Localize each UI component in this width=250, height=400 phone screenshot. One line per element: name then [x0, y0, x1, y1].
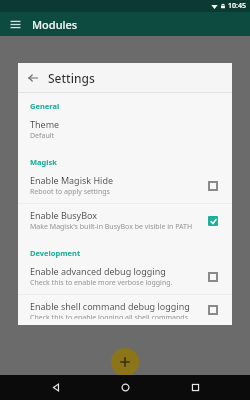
- staticText: Settings: [48, 70, 95, 86]
- staticText: Enable shell command debug logging: [30, 300, 190, 312]
- button[interactable]: Enable BusyBox: [18, 204, 232, 238]
- staticText: Check this to enable logging all shell c…: [30, 313, 198, 319]
- button[interactable]: Unchecked: [204, 301, 222, 319]
- staticText: Theme: [30, 118, 60, 130]
- button[interactable]: Back: [24, 69, 42, 87]
- button[interactable]: Enable Magisk Hide: [18, 169, 232, 203]
- staticText: Enable BusyBox: [30, 209, 98, 221]
- staticText: Enable advanced debug logging: [30, 265, 166, 277]
- staticText: Check this to enable more verbose loggin…: [30, 278, 173, 288]
- button[interactable]: Home: [111, 375, 139, 400]
- staticText: 10:45: [228, 1, 246, 11]
- staticText: Enable Magisk Hide: [30, 174, 114, 186]
- button[interactable]: Recent apps: [181, 375, 209, 400]
- staticText: General: [30, 101, 60, 111]
- button[interactable]: Checked: [204, 212, 222, 230]
- staticText: Modules: [32, 17, 78, 32]
- button[interactable]: Add module: [111, 348, 139, 376]
- button[interactable]: Theme: [18, 113, 232, 147]
- button[interactable]: Back: [42, 375, 70, 400]
- staticText: Reboot to apply settings: [30, 187, 110, 197]
- button[interactable]: Enable advanced debug logging: [18, 260, 232, 294]
- button[interactable]: Unchecked: [204, 177, 222, 195]
- staticText: Development: [30, 248, 81, 258]
- staticText: Magisk: [30, 157, 57, 167]
- button[interactable]: Unchecked: [204, 268, 222, 286]
- button[interactable]: Enable shell command debug logging: [18, 295, 232, 325]
- staticText: Make Magisk's built-in BusyBox be visibl…: [30, 222, 193, 232]
- staticText: Default: [30, 131, 55, 141]
- button[interactable]: Open navigation drawer: [6, 15, 24, 33]
